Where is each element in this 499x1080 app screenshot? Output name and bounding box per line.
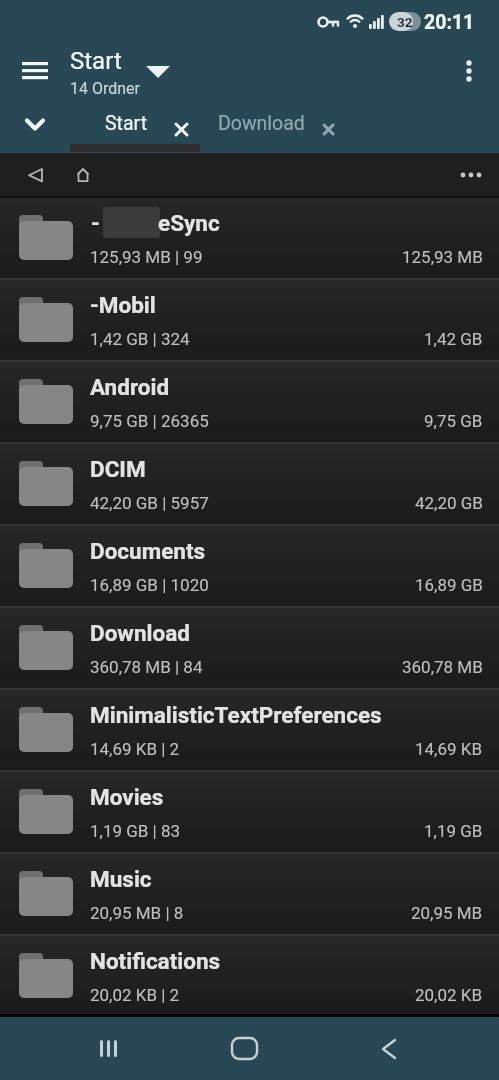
button[interactable]: MinimalisticTextPreferences: [0, 690, 499, 772]
staticText: DCIM: [90, 456, 146, 482]
staticText: 20,95 MB | 8: [90, 903, 184, 923]
button[interactable]: Start: [70, 108, 200, 152]
staticText: 360,78 MB | 84: [90, 657, 203, 677]
staticText: 1,19 GB | 83: [90, 821, 181, 841]
staticText: 9,75 GB: [424, 411, 483, 431]
staticText: Notifications: [90, 948, 221, 974]
staticText: 20,02 KB: [415, 985, 483, 1005]
button[interactable]: [22, 62, 48, 80]
button[interactable]: Download: [210, 108, 345, 152]
button[interactable]: [456, 56, 482, 88]
staticText: 1,19 GB: [424, 821, 483, 841]
staticText: 14 Ordner: [70, 79, 140, 98]
button[interactable]: [372, 1029, 404, 1069]
staticText: 20:11: [424, 11, 475, 34]
button[interactable]: [20, 110, 50, 138]
staticText: 360,78 MB: [402, 657, 483, 677]
staticText: Documents: [90, 538, 206, 564]
staticText: Start: [105, 112, 148, 135]
staticText: 20,02 KB | 2: [90, 985, 180, 1005]
button[interactable]: Download: [0, 608, 499, 690]
staticText: 1,42 GB | 324: [90, 329, 190, 349]
staticText: 32: [397, 14, 413, 30]
staticText: 42,20 GB: [415, 493, 483, 513]
staticText: -Mobil: [90, 292, 156, 318]
button[interactable]: Start: [60, 42, 190, 98]
staticText: 9,75 GB | 26365: [90, 411, 209, 431]
button[interactable]: Notifications: [0, 936, 499, 1018]
staticText: 125,93 MB | 99: [90, 247, 203, 267]
staticText: Start: [70, 47, 122, 75]
button[interactable]: [65, 160, 101, 190]
button[interactable]: [17, 160, 53, 190]
button[interactable]: [224, 1031, 264, 1067]
staticText: Android: [90, 374, 170, 400]
staticText: 20,95 MB: [411, 903, 483, 923]
staticText: 125,93 MB: [402, 247, 483, 267]
button[interactable]: Movies: [0, 772, 499, 854]
staticText: 16,89 GB | 1020: [90, 575, 209, 595]
button[interactable]: -: [0, 198, 499, 280]
staticText: Movies: [90, 784, 164, 810]
staticText: 14,69 KB: [415, 739, 483, 759]
staticText: -: [91, 210, 100, 236]
button[interactable]: [455, 161, 487, 189]
button[interactable]: Documents: [0, 526, 499, 608]
staticText: Download: [218, 112, 305, 135]
button[interactable]: DCIM: [0, 444, 499, 526]
button[interactable]: -Mobil: [0, 280, 499, 362]
button[interactable]: Android: [0, 362, 499, 444]
staticText: 14,69 KB | 2: [90, 739, 180, 759]
staticText: MinimalisticTextPreferences: [90, 702, 382, 728]
button[interactable]: [94, 1031, 126, 1067]
staticText: 16,89 GB: [415, 575, 483, 595]
button[interactable]: Music: [0, 854, 499, 936]
staticText: 42,20 GB | 5957: [90, 493, 209, 513]
staticText: eSync: [158, 210, 220, 236]
staticText: Music: [90, 866, 152, 892]
staticText: 1,42 GB: [424, 329, 483, 349]
staticText: Download: [90, 620, 190, 646]
